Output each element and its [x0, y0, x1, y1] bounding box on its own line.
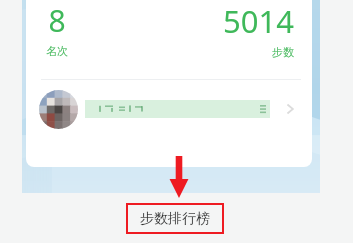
- staticText: 5014: [223, 0, 294, 42]
- button[interactable]: 步数排行榜: [127, 204, 223, 233]
- staticText: 8: [48, 0, 66, 41]
- staticText: 名次: [46, 44, 68, 58]
- other: 查看详情: [280, 99, 300, 119]
- button[interactable]: 查看详情: [26, 80, 312, 138]
- staticText: 步数排行榜: [140, 210, 210, 228]
- staticText: 步数: [272, 45, 294, 59]
